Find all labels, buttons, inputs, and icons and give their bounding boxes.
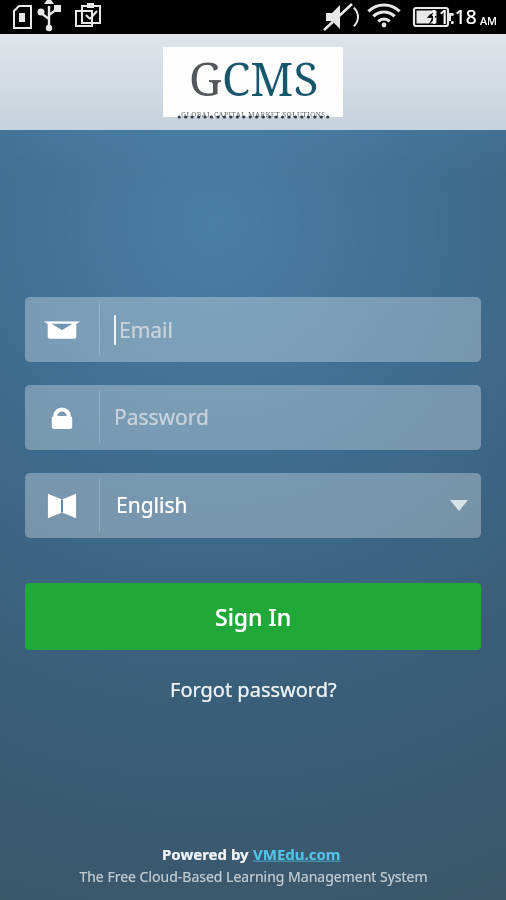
button[interactable]: Language (25, 473, 481, 538)
staticText: Email (119, 316, 173, 345)
staticText: AM (480, 13, 498, 28)
staticText: CMS (222, 47, 319, 110)
staticText: Forgot password? (170, 676, 337, 703)
button[interactable]: Powered by (162, 844, 345, 864)
staticText: Sign In (215, 601, 292, 632)
staticText: Password (114, 403, 209, 432)
button[interactable]: Password (25, 385, 481, 450)
button[interactable]: Sign In (25, 583, 481, 650)
staticText: English (116, 491, 188, 520)
staticText: G (189, 47, 222, 110)
staticText: VMEdu.com (253, 844, 345, 864)
button[interactable]: Email (25, 297, 481, 362)
other: Password (25, 385, 99, 450)
other: Email (25, 297, 99, 362)
staticText: 11:18 (428, 4, 477, 30)
button[interactable]: Forgot password? (158, 670, 349, 709)
other: Language (25, 473, 99, 538)
staticText: Powered by (162, 844, 253, 864)
staticText: GLOBAL CAPITAL MARKET SOLUTIONS (181, 110, 326, 117)
staticText: The Free Cloud-Based Learning Management… (79, 867, 428, 886)
